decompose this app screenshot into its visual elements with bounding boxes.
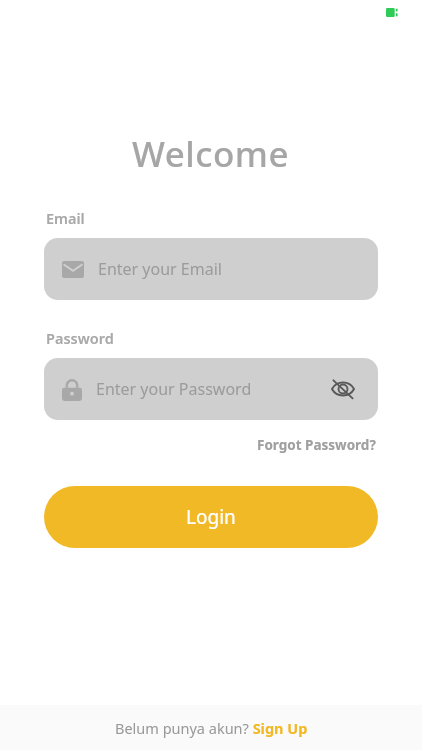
staticText: Enter your Email [98,258,360,280]
staticText: Login [186,504,236,530]
staticText: Enter your Password [96,378,326,400]
staticText: Forgot Password? [257,436,376,454]
button[interactable]: Show password [326,372,360,406]
button[interactable]: Enter your Email [44,238,378,300]
staticText: Email [46,208,85,228]
button[interactable]: Belum punya akun? Sign Up [109,714,314,742]
button[interactable]: Forgot Password? [255,433,378,457]
button[interactable]: Enter your Password [44,358,378,420]
staticText: Welcome [132,130,290,178]
button[interactable]: Login [44,486,378,548]
staticText: Password [46,328,114,348]
staticText: Belum punya akun? Sign Up [115,718,308,738]
